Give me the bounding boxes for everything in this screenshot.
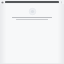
button[interactable]: Navigation menu [1,1,4,4]
button[interactable]: More options [60,1,63,4]
button[interactable] [5,1,59,3]
button[interactable]: Illustration [29,8,36,15]
